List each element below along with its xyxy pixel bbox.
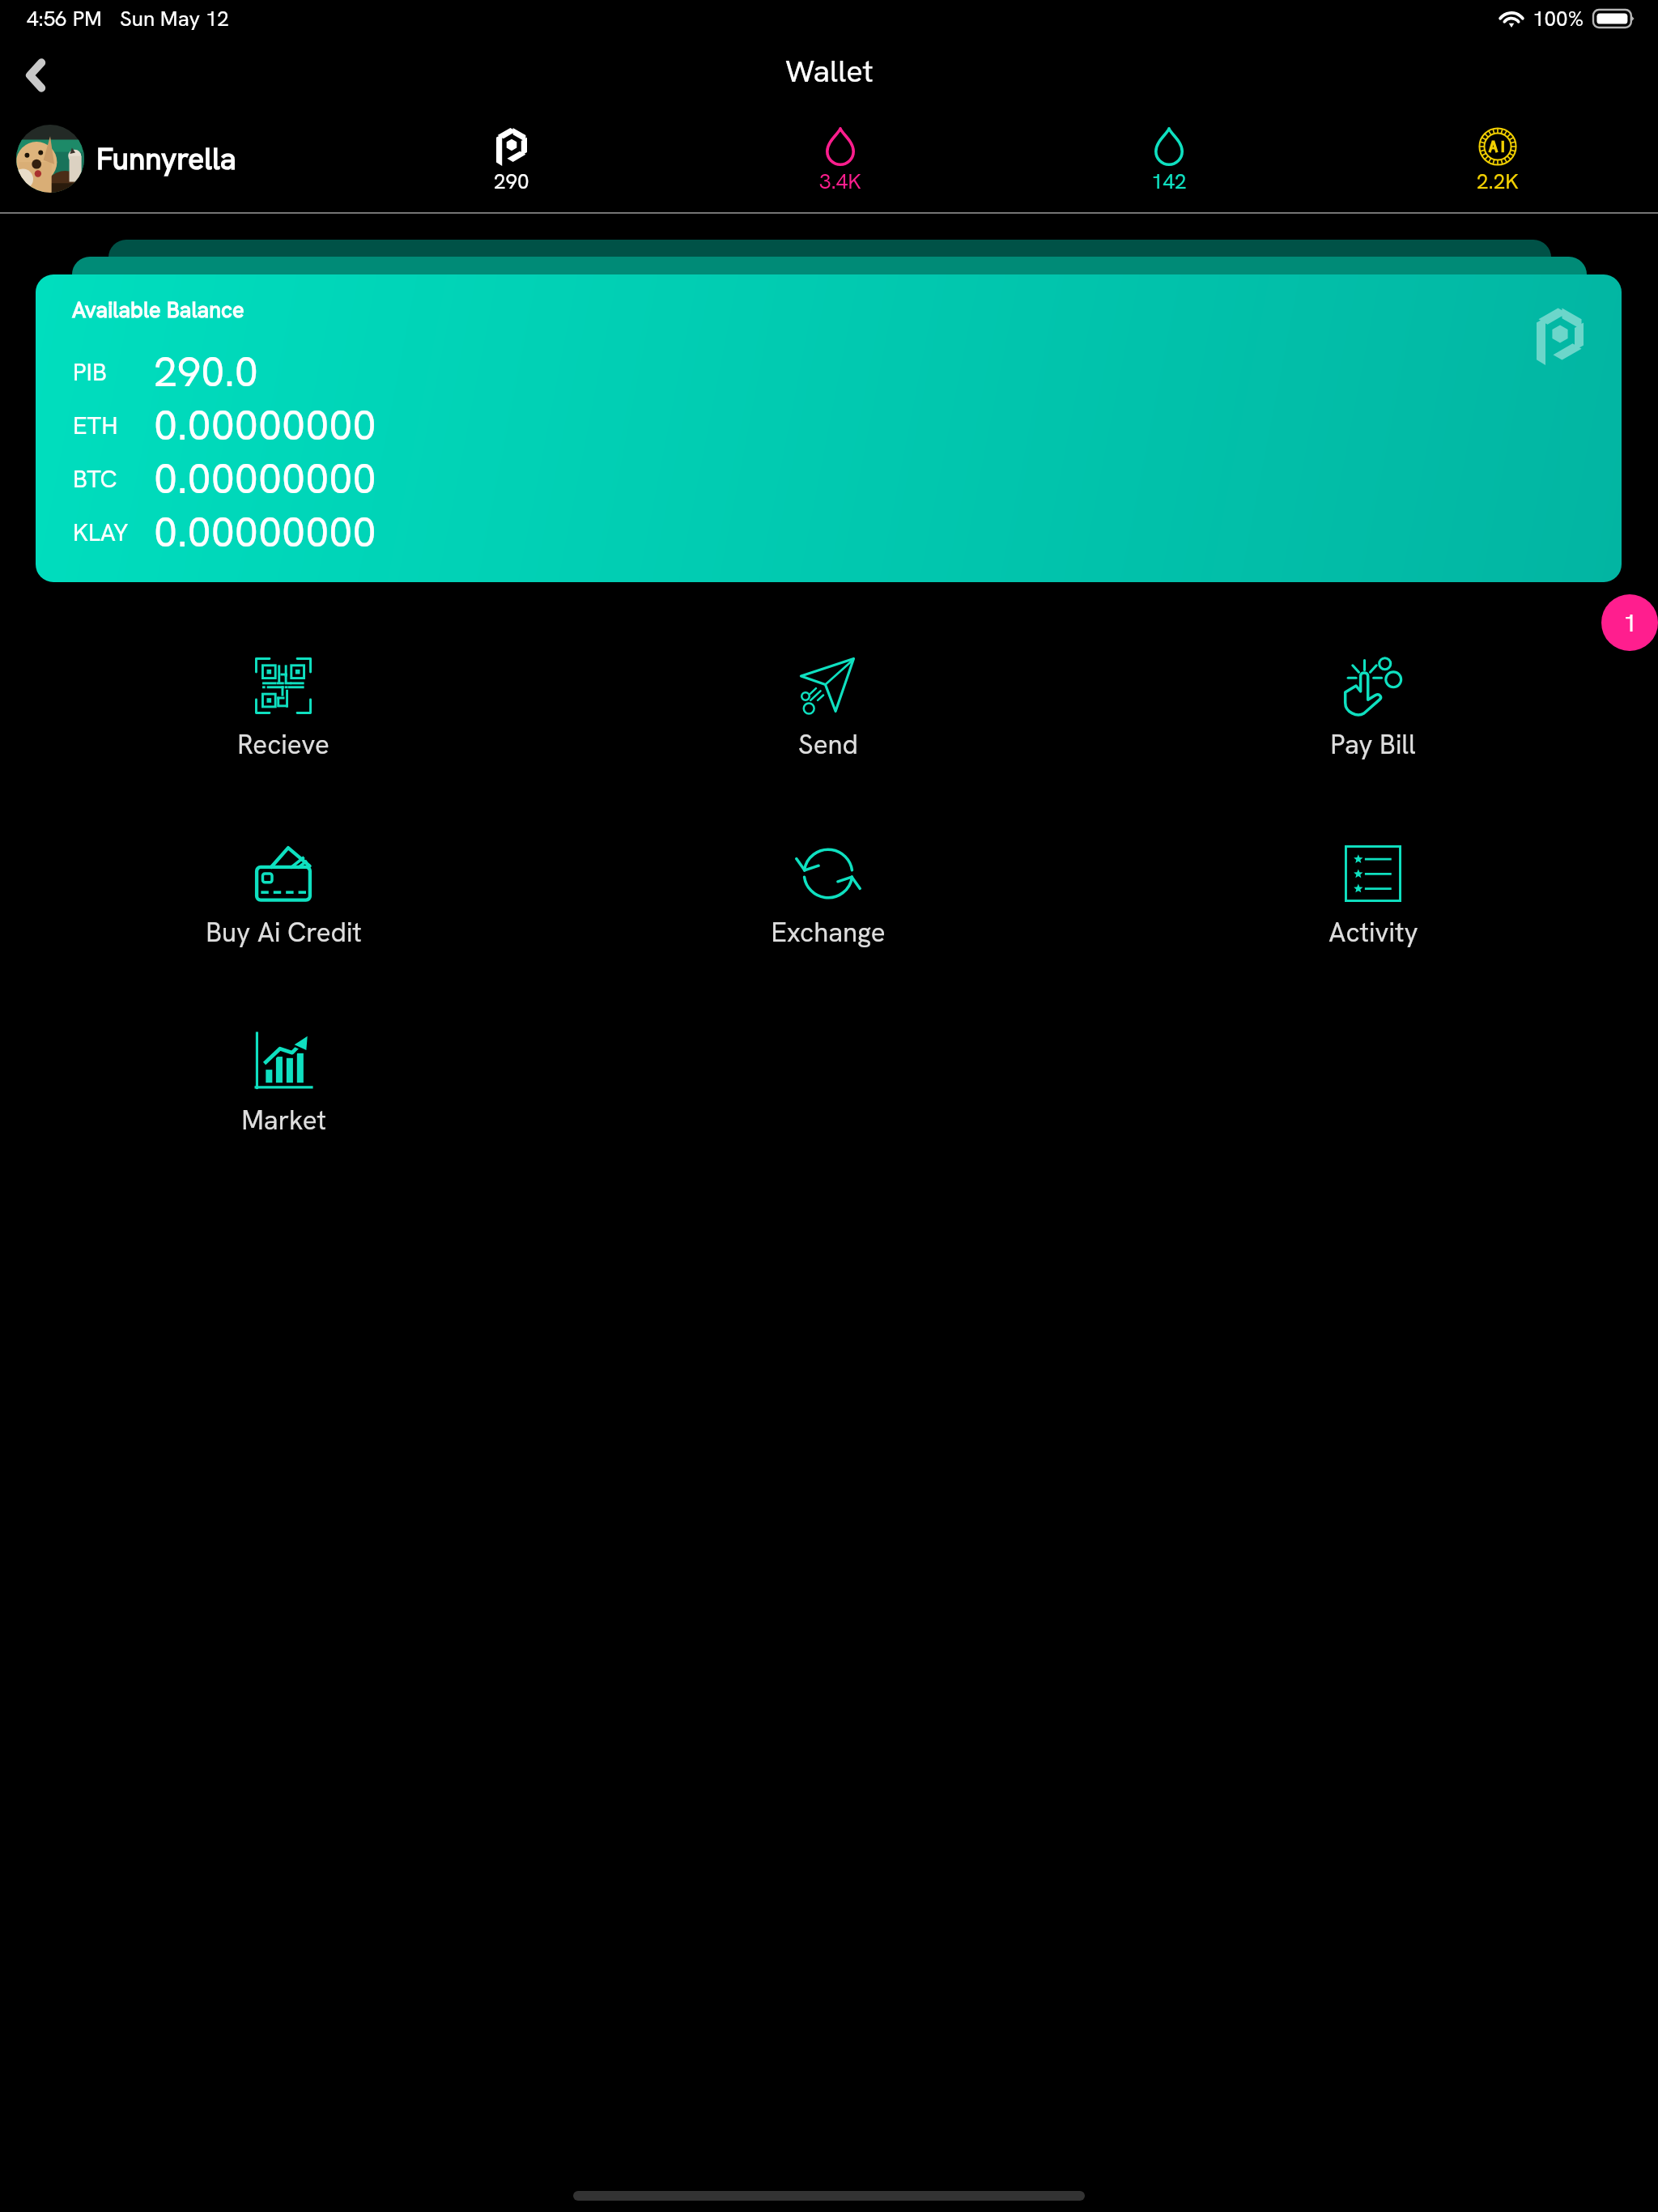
staticText: Recieve: [237, 727, 329, 762]
button[interactable]: Available Balance: [36, 274, 1622, 582]
button[interactable]: Pay Bill: [1235, 638, 1511, 784]
staticText: KLAY: [73, 517, 129, 548]
button[interactable]: Ai credits 2.2K: [1417, 127, 1579, 192]
button[interactable]: Recieve: [146, 638, 421, 784]
staticText: Wallet: [785, 51, 874, 91]
staticText: Buy Ai Credit: [206, 915, 362, 950]
staticText: PIB: [73, 356, 108, 388]
button[interactable]: Back: [0, 41, 76, 109]
staticText: Funnyrella: [96, 139, 236, 178]
staticText: ETH: [73, 410, 118, 441]
staticText: 290: [494, 168, 529, 192]
staticText: Market: [241, 1103, 326, 1138]
staticText: BTC: [73, 463, 117, 495]
button[interactable]: PIB balance 290: [431, 127, 593, 192]
button[interactable]: Market: [146, 1014, 421, 1159]
staticText: Activity: [1329, 915, 1418, 950]
staticText: 1: [1623, 607, 1637, 639]
staticText: Sun May 12: [120, 5, 229, 32]
staticText: Exchange: [771, 915, 886, 950]
button[interactable]: Buy Ai Credit: [146, 826, 421, 972]
staticText: 142: [1151, 168, 1187, 192]
button[interactable]: Activity: [1235, 826, 1511, 972]
staticText: Available Balance: [72, 296, 244, 324]
staticText: 100%: [1533, 5, 1584, 32]
staticText: 4:56 PM: [27, 5, 102, 32]
button[interactable]: Send: [691, 638, 966, 784]
button[interactable]: 1: [1601, 594, 1658, 651]
staticText: 0.00000000: [154, 398, 376, 453]
staticText: 2.2K: [1477, 168, 1519, 192]
button[interactable]: Teal drops 142: [1088, 127, 1250, 192]
staticText: 3.4K: [819, 168, 861, 192]
staticText: Pay Bill: [1330, 727, 1416, 762]
button[interactable]: Exchange: [691, 826, 966, 972]
staticText: 0.00000000: [154, 504, 376, 559]
staticText: Send: [798, 727, 858, 762]
button[interactable]: Pink drops 3.4K: [759, 127, 921, 192]
button[interactable]: Funnyrella: [0, 105, 348, 211]
staticText: 290.0: [154, 344, 258, 399]
staticText: 0.00000000: [154, 451, 376, 506]
